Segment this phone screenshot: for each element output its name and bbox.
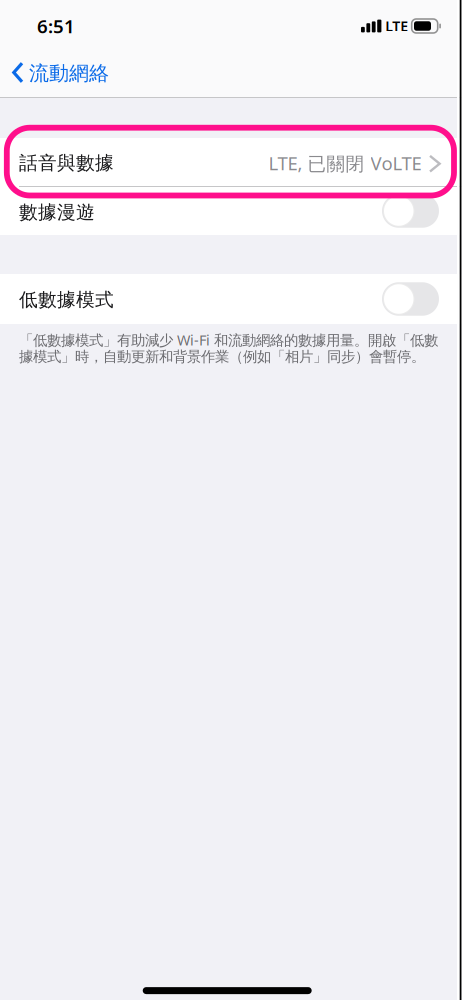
button[interactable]: 低數據模式 (0, 274, 462, 324)
button[interactable]: 話音與數據 (0, 138, 462, 186)
staticText: 流動網絡 (29, 61, 109, 86)
staticText: 低數據模式 (19, 288, 114, 311)
staticText: 話音與數據 (19, 151, 114, 175)
staticText: LTE (385, 16, 408, 36)
staticText: 「低數據模式」有助減少 Wi-Fi 和流動網絡的數據用量。開啟「低數據模式」時，… (19, 330, 438, 366)
button[interactable]: 數據漫遊 (0, 187, 462, 235)
button[interactable]: 流動網絡 (0, 48, 121, 97)
staticText: 6:51 (37, 13, 75, 39)
staticText: 數據漫遊 (19, 200, 95, 224)
staticText: LTE, 已關閉 VoLTE (269, 150, 422, 176)
